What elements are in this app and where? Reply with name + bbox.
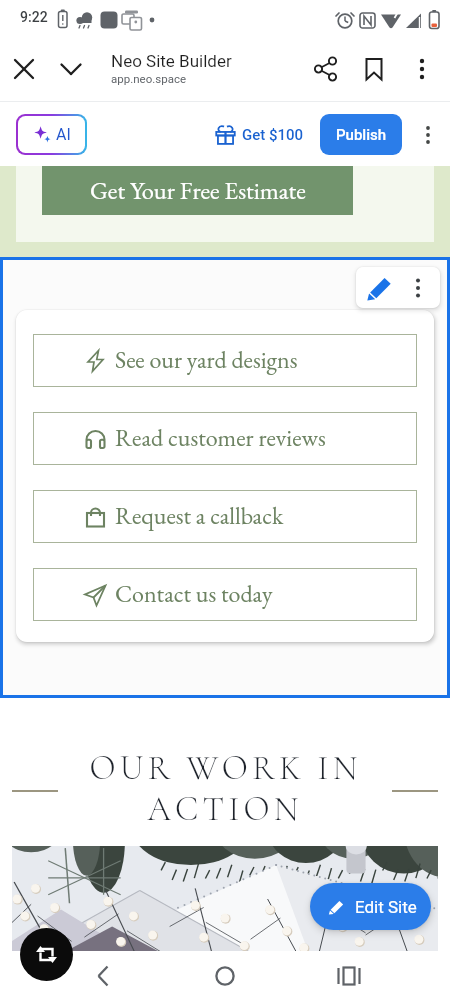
staticText: 9:22 [20, 9, 48, 25]
staticText: Get Your Free Estimate [90, 174, 306, 206]
staticText: app.neo.space [111, 72, 187, 85]
button[interactable]: Bookmark [354, 49, 394, 89]
button[interactable]: Publish [320, 114, 402, 155]
button[interactable]: Section options [403, 273, 433, 303]
button[interactable]: Edit Site [310, 883, 431, 930]
staticText: Get $100 [242, 126, 304, 144]
button[interactable]: Edit section [361, 270, 397, 306]
button[interactable]: Menu [412, 119, 444, 151]
button[interactable]: Read customer reviews [33, 412, 417, 465]
button[interactable]: Get $100 [215, 115, 304, 155]
staticText: OUR WORK IN [89, 748, 362, 789]
staticText: Contact us today [115, 578, 273, 609]
button[interactable]: Get Your Free Estimate [42, 166, 353, 215]
button[interactable]: Request a callback [33, 490, 417, 543]
button[interactable]: Switch device preview [20, 928, 73, 981]
staticText: Request a callback [115, 500, 284, 531]
button[interactable]: Home [203, 954, 247, 998]
button[interactable]: See our yard designs [33, 334, 417, 387]
staticText: Publish [336, 126, 387, 144]
staticText: Neo Site Builder [111, 51, 232, 71]
button[interactable]: Collapse [51, 49, 91, 89]
button[interactable]: Close [4, 49, 44, 89]
button[interactable]: Contact us today [33, 568, 417, 621]
staticText: See our yard designs [115, 344, 298, 375]
button[interactable]: More options [402, 49, 442, 89]
button[interactable]: Back [81, 954, 125, 998]
button[interactable]: Share [306, 49, 346, 89]
button[interactable]: AI [18, 116, 85, 153]
staticText: AI [56, 125, 71, 144]
staticText: Edit Site [355, 897, 417, 917]
staticText: Read customer reviews [115, 422, 326, 453]
button[interactable]: Recent apps [327, 954, 371, 998]
staticText: ACTION [147, 789, 303, 830]
